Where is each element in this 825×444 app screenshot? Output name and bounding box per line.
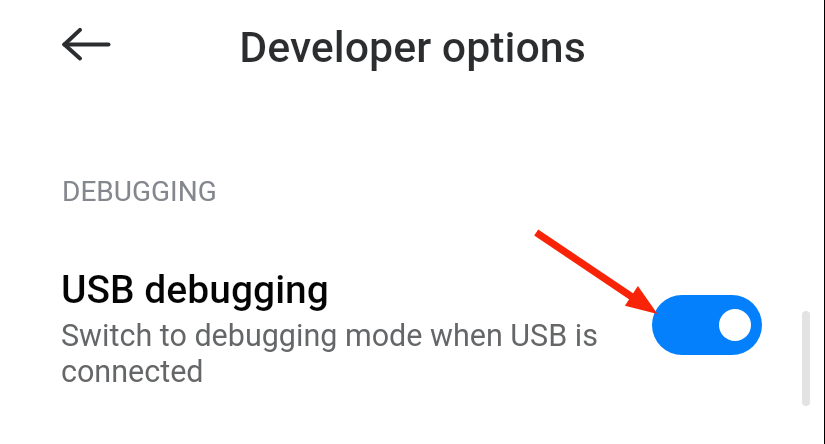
button[interactable]: USB debugging, on — [652, 295, 762, 355]
staticText: Switch to debugging mode when USB is con… — [61, 318, 609, 390]
button[interactable]: USB debugging — [0, 248, 825, 398]
staticText: Developer options — [0, 22, 825, 72]
staticText: USB debugging — [61, 267, 329, 313]
staticText: DEBUGGING — [62, 175, 217, 208]
button[interactable]: Navigate up — [41, 20, 133, 69]
